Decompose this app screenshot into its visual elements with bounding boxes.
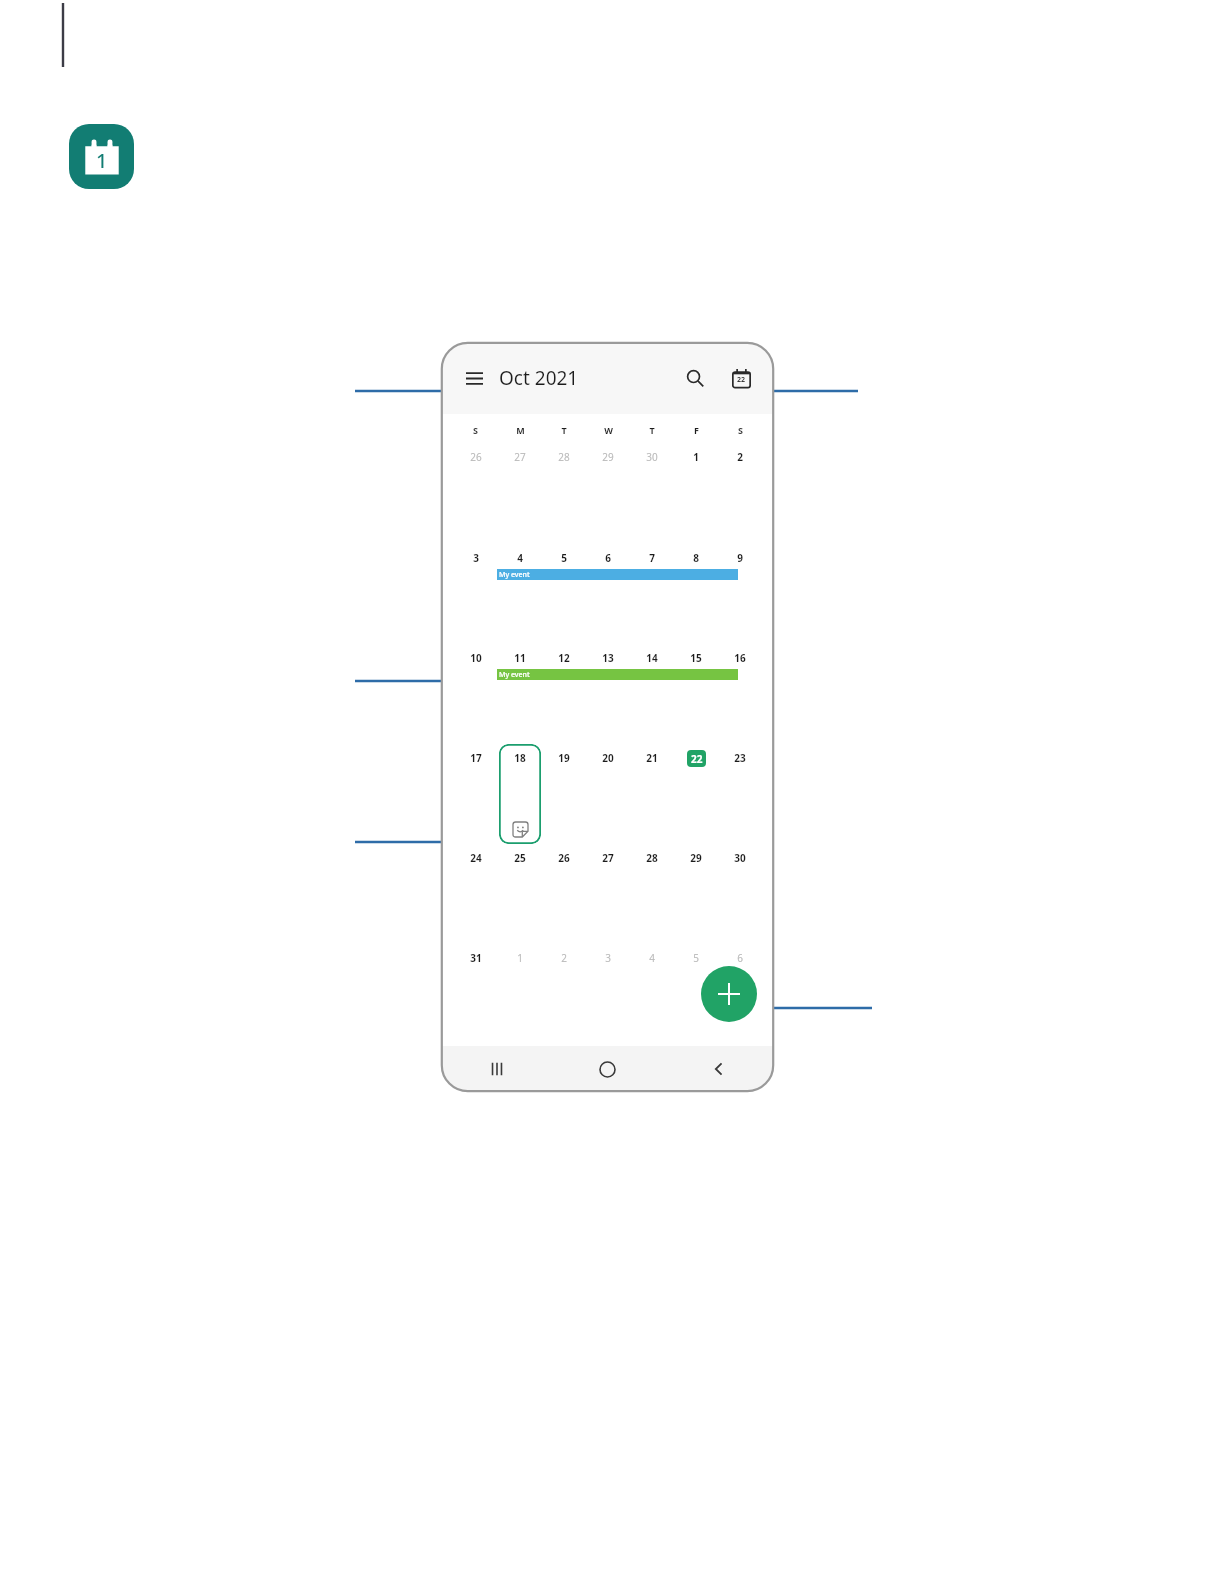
button[interactable]: 30 [718, 849, 762, 867]
button[interactable]: Sticker [499, 744, 541, 844]
button[interactable]: Recents [441, 1046, 552, 1092]
staticText: 22 [691, 752, 703, 766]
button[interactable]: 6 [586, 549, 630, 567]
staticText: 28 [558, 450, 570, 464]
button[interactable]: 23 [718, 749, 762, 767]
staticText: 17 [470, 751, 482, 765]
button[interactable]: My event [497, 669, 738, 680]
button[interactable]: 31 [453, 949, 498, 967]
staticText: 3 [473, 551, 479, 565]
staticText: 27 [514, 450, 526, 464]
button[interactable]: Go to today [724, 361, 758, 395]
button[interactable]: 25 [498, 849, 542, 867]
staticText: 1 [517, 951, 523, 965]
other: Step 1 calendar icon [69, 124, 134, 189]
staticText: 6 [737, 951, 743, 965]
staticText: 30 [646, 450, 658, 464]
button[interactable]: 28 [542, 448, 586, 466]
staticText: S [473, 424, 478, 436]
button[interactable]: 29 [674, 849, 718, 867]
button[interactable]: 10 [453, 649, 498, 667]
staticText: 19 [558, 751, 570, 765]
button[interactable]: 3 [453, 549, 498, 567]
button[interactable]: 12 [542, 649, 586, 667]
staticText: 15 [690, 651, 702, 665]
staticText: 1 [693, 450, 699, 464]
button[interactable]: 2 [718, 448, 762, 466]
button[interactable]: 1 [674, 448, 718, 466]
staticText: 14 [646, 651, 658, 665]
button[interactable]: 9 [718, 549, 762, 567]
staticText: 2 [737, 450, 743, 464]
staticText: 3 [605, 951, 611, 965]
button[interactable]: 28 [630, 849, 674, 867]
button[interactable]: Back [663, 1046, 774, 1092]
staticText: 29 [602, 450, 614, 464]
button[interactable]: 17 [453, 749, 498, 767]
button[interactable]: 26 [542, 849, 586, 867]
button[interactable]: 26 [453, 448, 498, 466]
button[interactable]: 2 [542, 949, 586, 967]
button[interactable]: 19 [542, 749, 586, 767]
staticText: 30 [734, 851, 746, 865]
button[interactable]: 29 [586, 448, 630, 466]
button[interactable]: 8 [674, 549, 718, 567]
button[interactable]: My event [497, 569, 738, 580]
staticText: 10 [470, 651, 482, 665]
staticText: 11 [514, 651, 526, 665]
button[interactable]: 22 [674, 749, 718, 767]
button[interactable]: Search [678, 361, 712, 395]
button[interactable]: 11 [498, 649, 542, 667]
staticText: 26 [470, 450, 482, 464]
staticText: 5 [561, 551, 567, 565]
staticText: S [738, 424, 743, 436]
staticText: W [604, 424, 613, 436]
button[interactable]: 13 [586, 649, 630, 667]
staticText: 26 [558, 851, 570, 865]
button[interactable]: 15 [674, 649, 718, 667]
button[interactable]: Home [552, 1046, 663, 1092]
staticText: 28 [646, 851, 658, 865]
button[interactable]: 27 [498, 448, 542, 466]
button[interactable]: 5 [542, 549, 586, 567]
button[interactable]: 30 [630, 448, 674, 466]
button[interactable]: Add event [701, 966, 757, 1022]
button[interactable]: 16 [718, 649, 762, 667]
button[interactable]: Open navigation menu [457, 361, 491, 395]
staticText: 8 [693, 551, 699, 565]
button[interactable]: 6 [718, 949, 762, 967]
button[interactable]: 14 [630, 649, 674, 667]
button[interactable]: 18 [498, 749, 542, 767]
staticText: M [516, 424, 525, 436]
button[interactable]: 24 [453, 849, 498, 867]
staticText: 21 [646, 751, 658, 765]
button[interactable]: 1 [498, 949, 542, 967]
button[interactable]: 4 [630, 949, 674, 967]
staticText: 25 [514, 851, 526, 865]
staticText: T [649, 424, 655, 436]
staticText: 6 [605, 551, 611, 565]
staticText: 4 [517, 551, 523, 565]
button[interactable]: 21 [630, 749, 674, 767]
button[interactable]: 3 [586, 949, 630, 967]
staticText: My event [499, 670, 530, 680]
staticText: 24 [470, 851, 482, 865]
button[interactable]: 27 [586, 849, 630, 867]
staticText: 2 [561, 951, 567, 965]
button[interactable]: 20 [586, 749, 630, 767]
button[interactable]: 5 [674, 949, 718, 967]
staticText: Oct 2021 [499, 365, 579, 391]
staticText: 9 [737, 551, 743, 565]
staticText: 4 [649, 951, 655, 965]
staticText: 1 [96, 147, 108, 174]
staticText: 18 [514, 751, 526, 765]
staticText: 23 [734, 751, 746, 765]
button[interactable]: 4 [498, 549, 542, 567]
staticText: 20 [602, 751, 614, 765]
staticText: 31 [470, 951, 482, 965]
staticText: 29 [690, 851, 702, 865]
staticText: 7 [649, 551, 655, 565]
staticText: 13 [602, 651, 614, 665]
button[interactable]: 7 [630, 549, 674, 567]
staticText: F [694, 424, 699, 436]
